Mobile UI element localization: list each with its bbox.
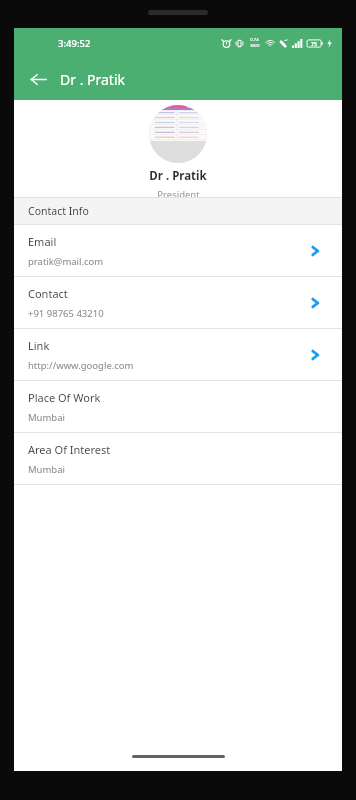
staticText: +91 98765 43210 [28, 307, 104, 320]
staticText: KB/S [250, 43, 260, 49]
staticText: 0.74 [250, 37, 259, 43]
button[interactable]: Link [14, 329, 342, 380]
button[interactable]: Email [14, 225, 342, 276]
staticText: http://www.google.com [28, 359, 134, 372]
staticText: Mumbai [28, 411, 65, 424]
staticText: Contact [28, 286, 68, 301]
staticText: President [157, 188, 200, 197]
staticText: Area Of Interest [28, 442, 111, 457]
button[interactable]: Contact [14, 277, 342, 328]
staticText: Link [28, 338, 50, 353]
staticText: Contact Info [28, 204, 89, 218]
staticText: pratik@mail.com [28, 255, 104, 268]
staticText: Email [28, 234, 57, 249]
staticText: Dr . Pratik [60, 70, 126, 89]
button[interactable]: Back [22, 63, 54, 95]
staticText: Dr . Pratik [149, 168, 207, 184]
staticText: 75 [311, 40, 317, 47]
button[interactable]: Area Of Interest [14, 433, 342, 484]
staticText: Mumbai [28, 463, 65, 476]
button[interactable]: Place Of Work [14, 381, 342, 432]
staticText: Place Of Work [28, 390, 101, 405]
staticText: 3:49:52 [58, 37, 91, 50]
